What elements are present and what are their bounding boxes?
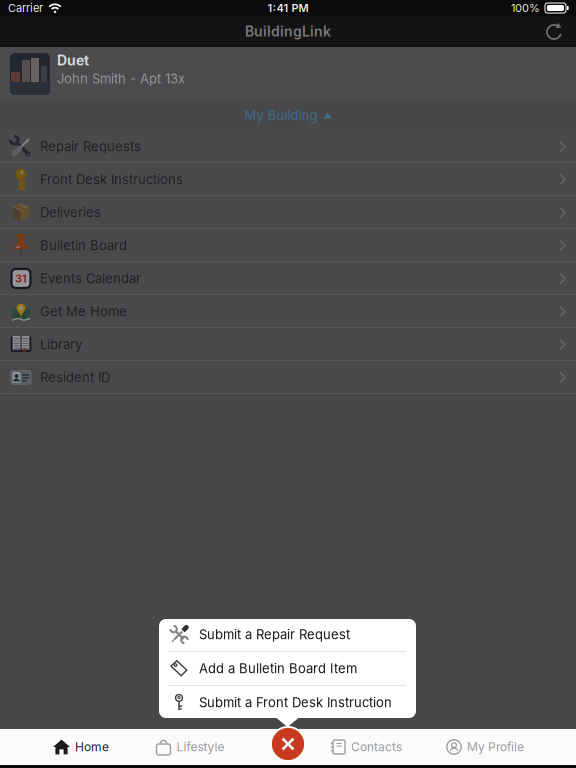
staticText: Add a Bulletin Board Item	[199, 661, 357, 676]
staticText: Submit a Repair Request	[199, 627, 350, 642]
button[interactable]: Submit a Repair Request	[159, 618, 416, 651]
button[interactable]: Resident ID	[0, 361, 576, 394]
staticText: Library	[40, 337, 82, 352]
button[interactable]: Home	[53, 739, 109, 755]
staticText: Submit a Front Desk Instruction	[199, 695, 392, 710]
staticText: 100%	[511, 1, 540, 15]
button[interactable]: Close menu	[270, 726, 306, 762]
button[interactable]: Lifestyle	[155, 739, 224, 755]
button[interactable]: Repair Requests	[0, 130, 576, 163]
button[interactable]: Contacts	[330, 739, 402, 755]
staticText: Contacts	[351, 740, 402, 754]
staticText: Events Calendar	[40, 271, 141, 286]
staticText: 31	[15, 272, 27, 285]
button[interactable]: My Building	[0, 101, 576, 130]
staticText: Resident ID	[40, 370, 110, 385]
button[interactable]: Library	[0, 328, 576, 361]
button[interactable]: Submit a Front Desk Instruction	[159, 686, 416, 719]
button[interactable]: Bulletin Board	[0, 229, 576, 262]
staticText: My Building	[244, 108, 317, 123]
button[interactable]: Get Me Home	[0, 295, 576, 328]
staticText: Deliveries	[40, 205, 101, 220]
staticText: BuildingLink	[245, 23, 331, 40]
button[interactable]: Add a Bulletin Board Item	[159, 652, 416, 685]
staticText: John Smith - Apt 13x	[57, 71, 185, 87]
button[interactable]: Deliveries	[0, 196, 576, 229]
button[interactable]: Duet	[0, 47, 576, 101]
staticText: 1:41 PM	[267, 1, 308, 15]
staticText: Home	[75, 740, 109, 754]
staticText: Lifestyle	[176, 740, 224, 754]
staticText: Repair Requests	[40, 139, 141, 154]
button[interactable]: My Profile	[446, 739, 524, 755]
staticText: My Profile	[467, 740, 524, 754]
staticText: Front Desk Instructions	[40, 172, 183, 187]
button[interactable]: 31	[0, 262, 576, 295]
staticText: Carrier	[8, 1, 43, 15]
staticText: Duet	[57, 52, 89, 69]
staticText: Get Me Home	[40, 304, 127, 319]
staticText: Bulletin Board	[40, 238, 127, 253]
button[interactable]: Refresh	[545, 22, 576, 41]
button[interactable]: Front Desk Instructions	[0, 163, 576, 196]
